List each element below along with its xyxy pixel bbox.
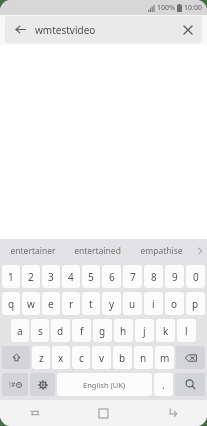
staticText: q	[8, 297, 15, 311]
staticText: j	[143, 324, 146, 338]
staticText: b	[119, 351, 126, 365]
staticText: e	[48, 297, 54, 311]
staticText: c	[79, 351, 84, 365]
button[interactable]: q	[2, 292, 20, 315]
staticText: English (UK)	[83, 380, 126, 390]
button[interactable]: 8	[144, 265, 163, 288]
staticText: l	[185, 324, 188, 338]
button[interactable]: .	[154, 373, 173, 396]
button[interactable]: 6	[102, 265, 121, 288]
staticText: 8	[151, 270, 157, 284]
button[interactable]: j	[135, 319, 154, 342]
staticText: 9	[172, 270, 178, 284]
button[interactable]: a	[11, 319, 29, 342]
button[interactable]: Home	[69, 400, 138, 426]
staticText: o	[171, 297, 178, 311]
staticText: 0	[193, 270, 199, 284]
staticText: g	[99, 324, 106, 338]
staticText: .	[162, 378, 165, 392]
button[interactable]: 4	[62, 265, 80, 288]
button[interactable]: y	[102, 292, 121, 315]
button[interactable]: g	[93, 319, 112, 342]
staticText: !#	[9, 380, 16, 390]
staticText: k	[163, 324, 169, 338]
button[interactable]: Recent apps	[0, 400, 69, 426]
button[interactable]: 3	[42, 265, 60, 288]
button[interactable]: Symbols and emoji	[2, 373, 28, 396]
button[interactable]: r	[62, 292, 80, 315]
staticText: w	[27, 297, 35, 311]
button[interactable]: v	[92, 346, 111, 369]
button[interactable]: n	[134, 346, 153, 369]
staticText: z	[39, 351, 44, 365]
staticText: 4	[68, 270, 74, 284]
button[interactable]: Back	[5, 16, 35, 43]
button[interactable]: d	[51, 319, 70, 342]
button[interactable]: m	[155, 346, 174, 369]
staticText: 100%	[157, 3, 175, 13]
button[interactable]: 0	[186, 265, 205, 288]
staticText: t	[89, 297, 93, 311]
staticText: n	[140, 351, 147, 365]
staticText: 7	[130, 270, 136, 284]
staticText: r	[69, 297, 74, 311]
staticText: 3	[48, 270, 54, 284]
staticText: a	[17, 324, 23, 338]
button[interactable]: s	[31, 319, 49, 342]
button[interactable]: t	[82, 292, 100, 315]
button[interactable]: empathise	[129, 239, 193, 263]
button[interactable]: o	[165, 292, 184, 315]
button[interactable]: b	[113, 346, 132, 369]
button[interactable]: entertained	[65, 239, 129, 263]
button[interactable]: More suggestions	[193, 239, 207, 263]
staticText: f	[80, 324, 84, 338]
staticText: s	[38, 324, 43, 338]
button[interactable]: 5	[82, 265, 100, 288]
button[interactable]: h	[114, 319, 133, 342]
staticText: 2	[28, 270, 34, 284]
button[interactable]: e	[42, 292, 60, 315]
staticText: y	[109, 297, 115, 311]
button[interactable]: 7	[123, 265, 142, 288]
button[interactable]: 9	[165, 265, 184, 288]
staticText: 6	[109, 270, 115, 284]
staticText: empathise	[140, 245, 183, 257]
button[interactable]: f	[72, 319, 91, 342]
staticText: x	[58, 351, 64, 365]
button[interactable]: 1	[2, 265, 20, 288]
button[interactable]: Shift	[2, 346, 30, 369]
button[interactable]: Backspace	[176, 346, 205, 369]
button[interactable]: w	[22, 292, 40, 315]
staticText: u	[129, 297, 136, 311]
staticText: i	[152, 297, 155, 311]
staticText: v	[99, 351, 105, 365]
button[interactable]: x	[52, 346, 70, 369]
staticText: d	[57, 324, 64, 338]
button[interactable]: z	[32, 346, 50, 369]
button[interactable]: English (UK)	[57, 373, 152, 396]
button[interactable]: k	[156, 319, 175, 342]
button[interactable]: c	[72, 346, 90, 369]
staticText: entertainer	[10, 245, 56, 257]
button[interactable]: Close keyboard	[138, 400, 207, 426]
staticText: h	[120, 324, 127, 338]
staticText: 1	[8, 270, 14, 284]
staticText: 5	[88, 270, 94, 284]
staticText: 10:00	[184, 3, 202, 13]
button[interactable]: p	[186, 292, 205, 315]
button[interactable]: u	[123, 292, 142, 315]
button[interactable]: entertainer	[0, 239, 65, 263]
staticText: entertained	[74, 245, 121, 257]
staticText: m	[160, 351, 170, 365]
button[interactable]: Clear text	[174, 16, 202, 43]
button[interactable]: Keyboard settings	[30, 373, 55, 396]
staticText: wmtestvideo	[35, 23, 174, 37]
staticText: p	[192, 297, 199, 311]
button[interactable]: Search	[175, 373, 205, 396]
button[interactable]: 2	[22, 265, 40, 288]
button[interactable]: i	[144, 292, 163, 315]
button[interactable]: l	[177, 319, 196, 342]
